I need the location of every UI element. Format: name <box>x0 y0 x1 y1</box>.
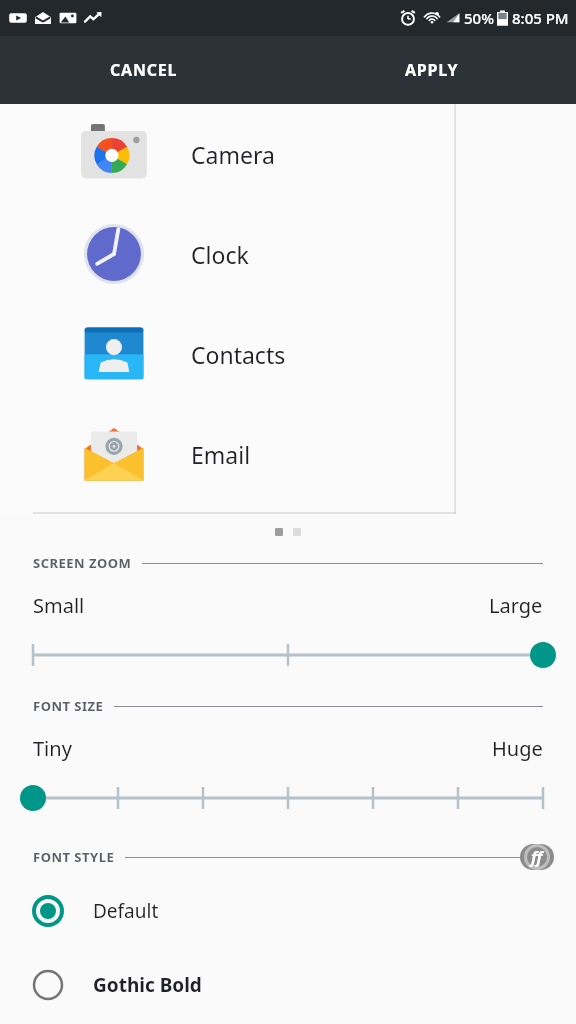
button[interactable]: Gothic Bold <box>0 962 576 1008</box>
button[interactable]: APPLY <box>288 36 576 104</box>
staticText: Large <box>489 592 543 619</box>
staticText: Default <box>93 898 159 924</box>
staticText: Camera <box>191 139 275 170</box>
staticText: FONT STYLE <box>33 848 115 866</box>
staticText: SCREEN ZOOM <box>33 554 132 572</box>
staticText: Contacts <box>191 339 286 370</box>
button[interactable]: Small to Large slider <box>0 639 576 671</box>
staticText: CANCEL <box>110 59 178 81</box>
staticText: ff <box>531 846 543 868</box>
staticText: Email <box>191 439 251 470</box>
staticText: 8:05 PM <box>512 8 569 28</box>
staticText: Gothic Bold <box>93 972 202 998</box>
staticText: Small <box>33 592 85 619</box>
staticText: FONT SIZE <box>33 697 104 715</box>
button[interactable]: Default <box>0 888 576 934</box>
staticText: Tiny <box>33 735 72 762</box>
button[interactable]: Clock <box>0 204 456 304</box>
staticText: Huge <box>492 735 543 762</box>
button[interactable]: CANCEL <box>0 36 288 104</box>
button[interactable]: Tiny to Huge slider <box>0 782 576 814</box>
button[interactable]: Contacts <box>0 304 456 404</box>
button[interactable]: Font preview <box>520 844 554 870</box>
button[interactable]: Camera <box>0 104 456 204</box>
staticText: Clock <box>191 239 249 270</box>
button[interactable]: Email <box>0 404 456 504</box>
staticText: APPLY <box>405 59 459 81</box>
staticText: 50% <box>464 8 494 28</box>
